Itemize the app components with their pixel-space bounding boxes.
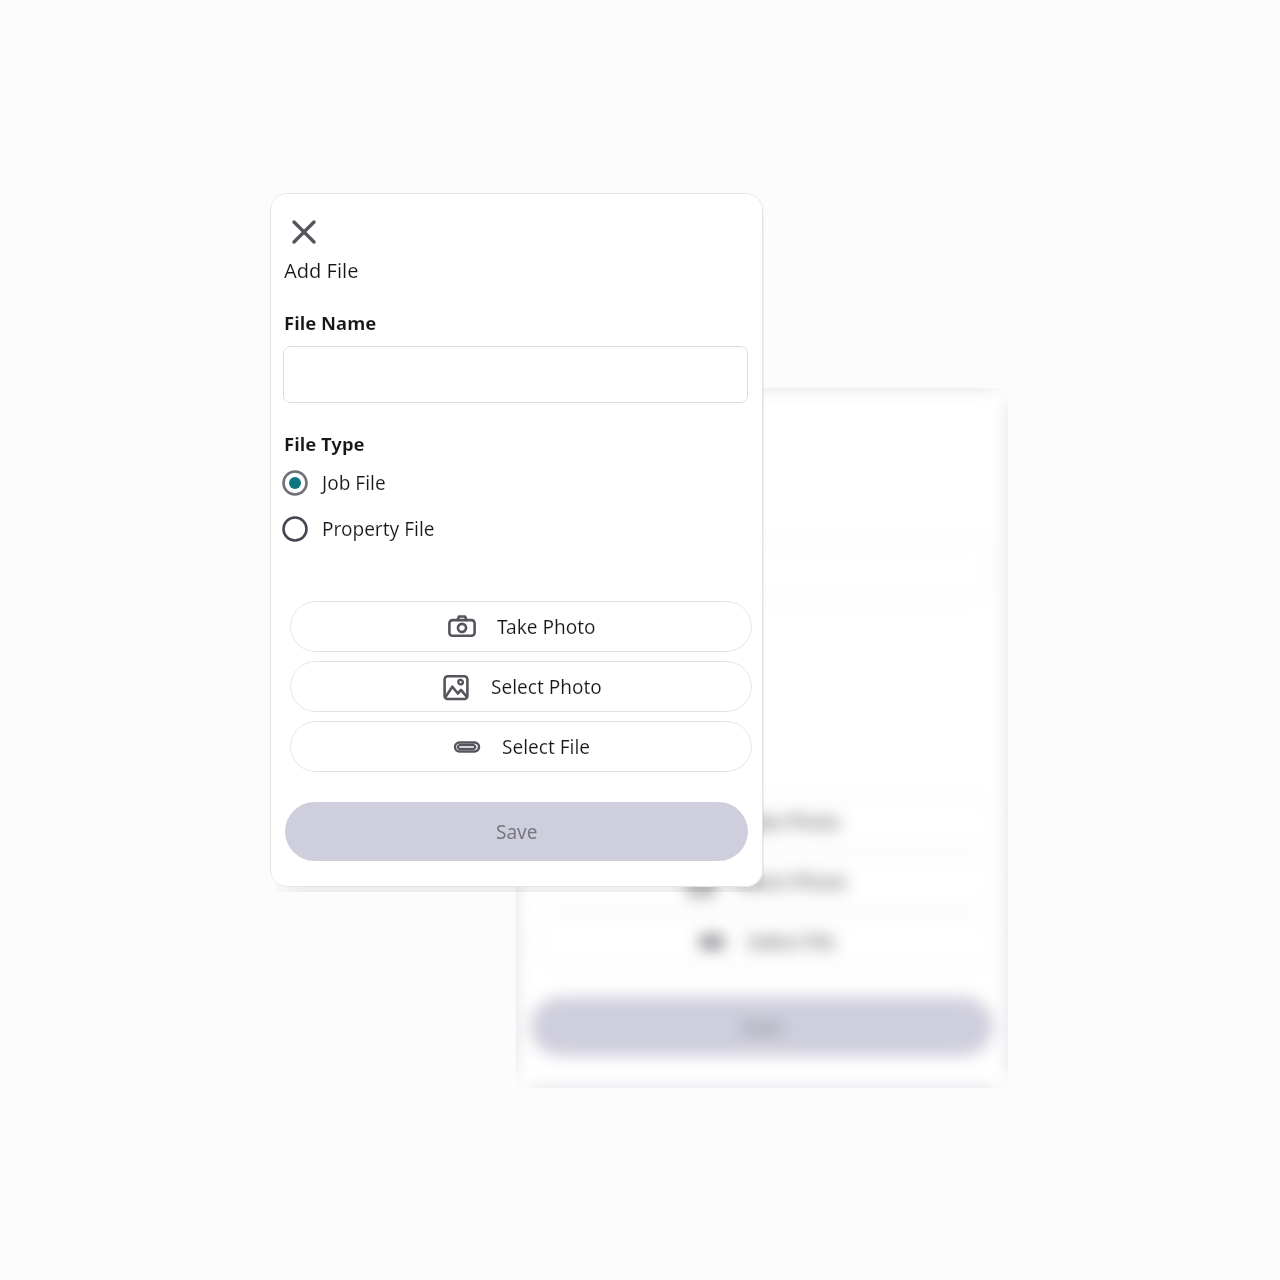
button[interactable]: Property File bbox=[526, 707, 993, 741]
button[interactable]: Take Photo bbox=[536, 796, 997, 847]
staticText: Select File bbox=[502, 734, 591, 760]
staticText: Save bbox=[496, 819, 538, 845]
staticText: Job File bbox=[568, 665, 632, 691]
staticText: File Type bbox=[530, 626, 611, 651]
button[interactable]: Job File bbox=[526, 661, 993, 695]
staticText: Select File bbox=[747, 929, 836, 955]
button[interactable]: Select File bbox=[536, 916, 997, 967]
staticText: Select Photo bbox=[736, 869, 847, 895]
button[interactable]: Take Photo bbox=[290, 601, 752, 652]
button[interactable]: Select File bbox=[290, 721, 752, 772]
staticText: File Name bbox=[284, 310, 377, 335]
button[interactable]: Job File bbox=[280, 466, 748, 500]
staticText: Select Photo bbox=[491, 674, 602, 700]
button[interactable]: Save bbox=[285, 802, 748, 861]
staticText: Take Photo bbox=[742, 809, 841, 835]
staticText: Take Photo bbox=[497, 614, 596, 640]
button[interactable]: Property File bbox=[280, 512, 748, 546]
button[interactable]: Save bbox=[531, 997, 993, 1056]
staticText: Add File bbox=[284, 257, 359, 284]
button[interactable]: Select Photo bbox=[536, 856, 997, 907]
staticText: Property File bbox=[568, 711, 681, 737]
button[interactable]: Close bbox=[279, 207, 329, 257]
staticText: File Type bbox=[284, 431, 365, 456]
button[interactable]: File name field bbox=[283, 346, 748, 403]
staticText: Job File bbox=[322, 470, 386, 496]
button[interactable]: Select Photo bbox=[290, 661, 752, 712]
button[interactable]: Close bbox=[525, 402, 575, 452]
staticText: Save bbox=[741, 1014, 783, 1040]
staticText: Property File bbox=[322, 516, 435, 542]
